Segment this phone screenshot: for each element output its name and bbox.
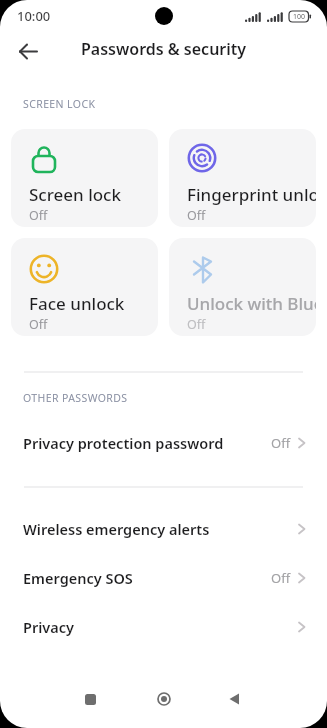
staticText: Off [271,569,291,587]
staticText: Fingerprint unlock [187,183,316,206]
staticText: Off [29,207,48,224]
staticText: Privacy protection password [23,433,271,453]
staticText: Face unlock [29,292,125,315]
staticText: Privacy [23,617,298,637]
staticText: Screen lock [29,183,121,206]
staticText: Off [29,316,48,333]
staticText: Off [187,316,206,333]
staticText: SCREEN LOCK [23,97,96,111]
staticText: Off [187,207,206,224]
staticText: Wireless emergency alerts [23,519,298,539]
staticText: OTHER PASSWORDS [23,391,128,405]
staticText: 10:00 [17,7,51,25]
staticText: Unlock with Bluetooth device [187,292,316,315]
staticText: Emergency SOS [23,568,271,588]
staticText: Passwords & security [81,38,247,60]
staticText: Off [271,434,291,452]
staticText: 100 [293,12,306,22]
